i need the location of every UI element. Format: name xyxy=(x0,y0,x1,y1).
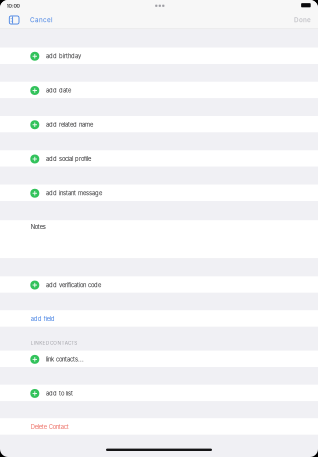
button[interactable]: Show Sidebar xyxy=(0,12,23,27)
staticText: Done xyxy=(294,16,311,24)
staticText: add verification code xyxy=(46,281,101,288)
staticText: add instant message xyxy=(46,190,102,197)
button[interactable]: Cancel xyxy=(23,12,57,28)
staticText: add birthday xyxy=(46,53,81,60)
button[interactable]: Done xyxy=(289,12,316,28)
button[interactable]: add to list xyxy=(0,385,318,401)
button[interactable]: link contacts... xyxy=(0,351,318,367)
staticText: add to list xyxy=(46,390,73,397)
button[interactable]: add field xyxy=(0,310,318,327)
staticText: link contacts... xyxy=(46,356,84,363)
staticText: 10:00 xyxy=(6,3,19,9)
staticText: add field xyxy=(31,315,55,322)
staticText: add date xyxy=(46,87,71,94)
staticText: LINKED CONTACTS xyxy=(31,340,77,346)
staticText: Notes xyxy=(31,223,46,230)
button[interactable]: add birthday xyxy=(0,47,318,64)
button[interactable]: Delete Contact xyxy=(0,418,318,435)
button[interactable]: add verification code xyxy=(0,276,318,293)
button[interactable]: add related name xyxy=(0,116,318,132)
button[interactable]: add instant message xyxy=(0,184,318,201)
staticText: Delete Contact xyxy=(31,423,69,430)
staticText: add related name xyxy=(46,121,93,128)
staticText: Cancel xyxy=(30,16,53,24)
button[interactable]: add social profile xyxy=(0,150,318,167)
staticText: add social profile xyxy=(46,155,91,162)
button[interactable]: add date xyxy=(0,82,318,98)
